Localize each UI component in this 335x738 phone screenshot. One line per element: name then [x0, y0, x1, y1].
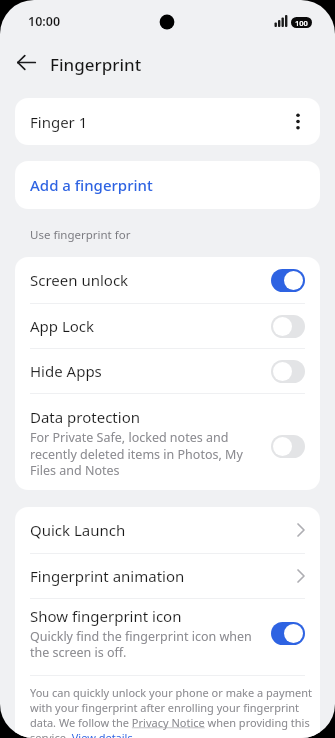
- staticText: Finger 1: [30, 112, 88, 132]
- button[interactable]: Add a fingerprint: [15, 161, 320, 209]
- staticText: Screen unlock: [30, 270, 129, 290]
- staticText: Show fingerprint icon: [30, 606, 182, 626]
- button[interactable]: [271, 315, 305, 338]
- button[interactable]: [271, 622, 305, 645]
- button[interactable]: [271, 269, 305, 292]
- staticText: Fingerprint: [50, 53, 142, 76]
- button[interactable]: Fingerprint animation: [15, 554, 320, 598]
- button[interactable]: App Lock: [15, 304, 320, 348]
- staticText: Use fingerprint for: [30, 227, 131, 243]
- staticText: Add a fingerprint: [30, 175, 153, 195]
- staticText: App Lock: [30, 316, 95, 336]
- button[interactable]: Quick Launch: [15, 507, 320, 553]
- staticText: For Private Safe, locked notes and recen…: [30, 429, 243, 478]
- button[interactable]: Finger 1: [15, 98, 320, 145]
- button[interactable]: Hide Apps: [15, 349, 320, 393]
- button[interactable]: Screen unlock: [15, 257, 320, 303]
- staticText: Hide Apps: [30, 361, 102, 381]
- button[interactable]: [271, 360, 305, 383]
- staticText: Quickly find the fingerprint icon when t…: [30, 628, 252, 661]
- staticText: Fingerprint animation: [30, 566, 185, 586]
- staticText: You can quickly unlock your phone or mak…: [30, 685, 312, 738]
- button[interactable]: [271, 435, 305, 458]
- button[interactable]: [8, 44, 44, 80]
- button[interactable]: Show fingerprint icon: [15, 599, 320, 675]
- button[interactable]: Data protection: [15, 394, 320, 490]
- staticText: Quick Launch: [30, 520, 126, 540]
- staticText: 100: [295, 18, 308, 28]
- staticText: Data protection: [30, 407, 140, 427]
- button[interactable]: [296, 113, 300, 130]
- staticText: 10:00: [28, 13, 61, 30]
